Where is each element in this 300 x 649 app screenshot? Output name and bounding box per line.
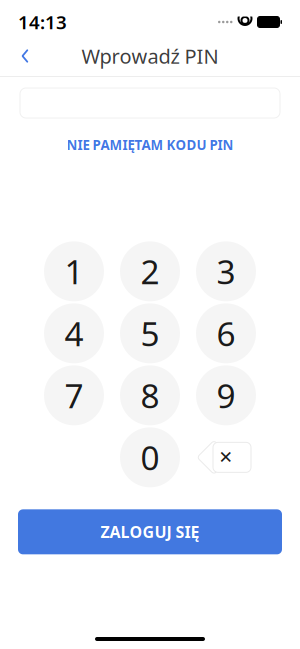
- button[interactable]: Back: [8, 39, 42, 73]
- button[interactable]: 1: [44, 241, 104, 301]
- button[interactable]: Delete: [196, 427, 256, 487]
- staticText: 4: [64, 311, 83, 355]
- button[interactable]: 5: [120, 303, 180, 363]
- button[interactable]: 7: [44, 365, 104, 425]
- button[interactable]: 3: [196, 241, 256, 301]
- button[interactable]: NIE PAMIĘTAM KODU PIN: [56, 131, 243, 159]
- staticText: Wprowadź PIN: [81, 43, 218, 69]
- staticText: ✕: [218, 447, 233, 467]
- staticText: 8: [140, 373, 159, 417]
- button[interactable]: 0: [120, 427, 180, 487]
- button[interactable]: 2: [120, 241, 180, 301]
- button[interactable]: 4: [44, 303, 104, 363]
- staticText: 9: [216, 373, 235, 417]
- button[interactable]: 8: [120, 365, 180, 425]
- staticText: 0: [140, 435, 159, 479]
- staticText: 6: [216, 311, 235, 355]
- button[interactable]: ZALOGUJ SIĘ: [18, 509, 282, 554]
- staticText: 3: [216, 249, 235, 293]
- staticText: 1: [64, 249, 83, 293]
- staticText: 7: [64, 373, 83, 417]
- button[interactable]: 9: [196, 365, 256, 425]
- staticText: 2: [140, 249, 159, 293]
- staticText: ZALOGUJ SIĘ: [100, 521, 199, 542]
- staticText: 14:13: [18, 10, 67, 34]
- button[interactable]: 6: [196, 303, 256, 363]
- staticText: 5: [140, 311, 159, 355]
- staticText: NIE PAMIĘTAM KODU PIN: [66, 136, 233, 154]
